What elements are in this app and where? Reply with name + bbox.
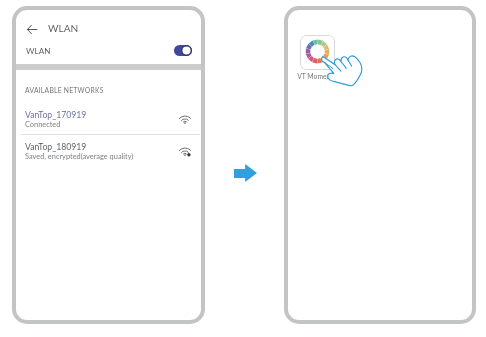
staticText: Saved, encrypted(average quality) xyxy=(25,152,134,161)
button[interactable]: Back xyxy=(16,10,201,38)
staticText: WLAN xyxy=(26,46,51,56)
staticText: AVAILABLE NETWORKS xyxy=(25,86,104,94)
button[interactable]: Back xyxy=(24,21,40,37)
button[interactable]: WLAN xyxy=(16,38,201,63)
staticText: VanTop_180919 xyxy=(25,141,87,151)
staticText: Connected xyxy=(25,120,61,129)
staticText: VT Moment xyxy=(288,72,342,80)
button[interactable]: WLAN switch on xyxy=(174,45,192,56)
button[interactable]: VanTop_180919, Saved, encrypted xyxy=(16,138,201,166)
button[interactable]: VanTop_170919, Connected xyxy=(16,106,201,134)
staticText: VanTop_170919 xyxy=(25,109,87,119)
staticText: WLAN xyxy=(48,22,79,34)
button[interactable]: VT Moment app xyxy=(300,35,335,70)
